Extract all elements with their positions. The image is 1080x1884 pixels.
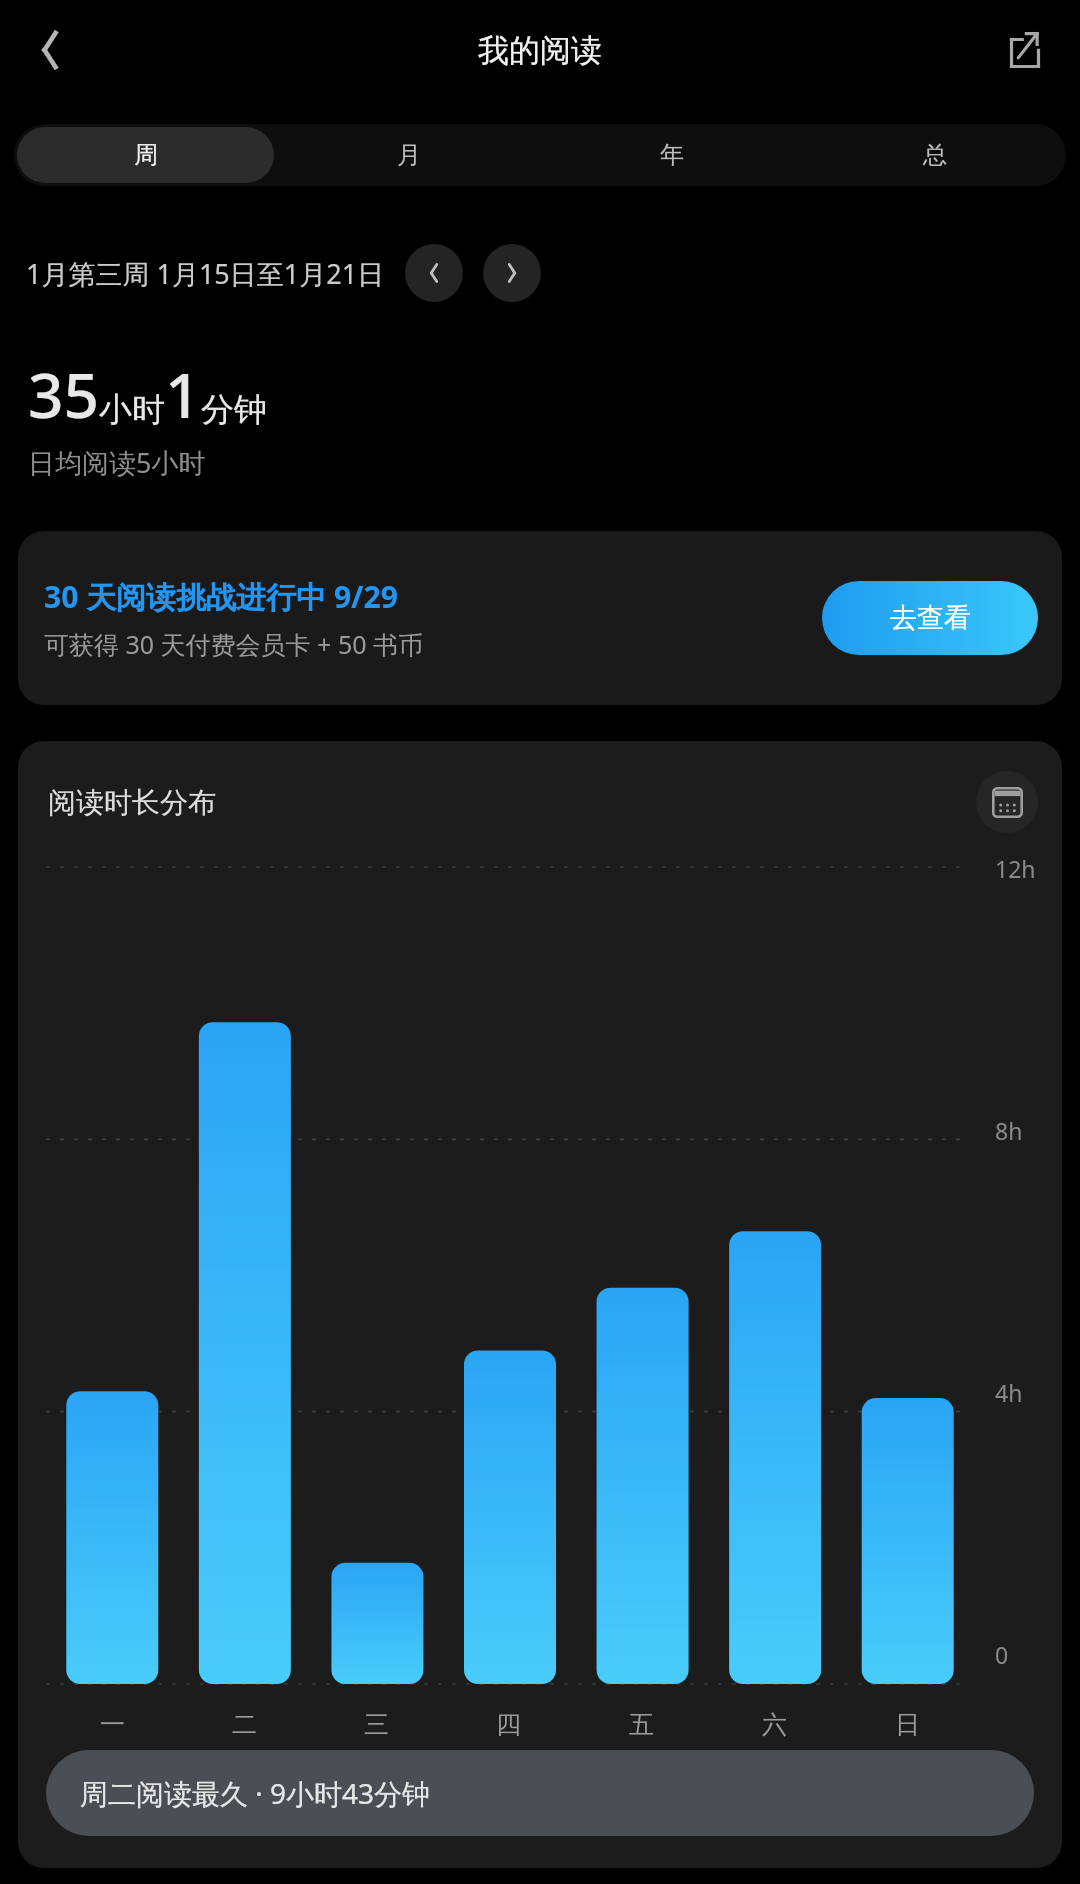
button[interactable]: Back bbox=[14, 14, 86, 86]
staticText: 我的阅读 bbox=[478, 31, 602, 70]
staticText: 可获得 30 天付费会员卡 + 50 书币 bbox=[44, 627, 424, 661]
staticText: 一 bbox=[100, 1709, 125, 1740]
button[interactable]: 去查看 bbox=[822, 581, 1038, 655]
button[interactable]: Previous week bbox=[405, 244, 463, 302]
staticText: 30 天阅读挑战进行中 9/29 bbox=[44, 576, 398, 617]
staticText: 35 bbox=[28, 352, 99, 436]
staticText: 去查看 bbox=[890, 601, 971, 635]
button[interactable]: 周 bbox=[17, 127, 274, 183]
staticText: 小时 bbox=[99, 389, 165, 431]
staticText: 4h bbox=[995, 1377, 1023, 1408]
staticText: 日 bbox=[895, 1709, 920, 1740]
button[interactable]: Share bbox=[992, 16, 1060, 84]
button[interactable]: 30 天阅读挑战进行中 9/29 bbox=[18, 531, 1062, 705]
button[interactable]: 周二阅读最久 · 9小时43分钟 bbox=[46, 1750, 1034, 1836]
staticText: 分钟 bbox=[201, 389, 267, 431]
staticText: 12h bbox=[995, 853, 1036, 884]
button[interactable]: 月 bbox=[280, 127, 537, 183]
staticText: 1 bbox=[165, 352, 201, 436]
staticText: 0 bbox=[995, 1639, 1009, 1670]
staticText: 周二阅读最久 · 9小时43分钟 bbox=[80, 1774, 431, 1812]
staticText: 月 bbox=[397, 140, 421, 170]
staticText: 日均阅读5小时 bbox=[28, 444, 206, 481]
button[interactable]: 年 bbox=[543, 127, 800, 183]
staticText: 四 bbox=[496, 1709, 521, 1740]
button[interactable]: Calendar bbox=[976, 771, 1038, 833]
staticText: 二 bbox=[232, 1709, 257, 1740]
staticText: 8h bbox=[995, 1115, 1023, 1146]
staticText: 三 bbox=[364, 1709, 389, 1740]
staticText: 六 bbox=[762, 1709, 787, 1740]
staticText: 总 bbox=[923, 140, 947, 170]
staticText: 五 bbox=[629, 1709, 654, 1740]
staticText: 年 bbox=[660, 140, 684, 170]
button[interactable]: Next week bbox=[483, 244, 541, 302]
button[interactable]: 总 bbox=[806, 127, 1063, 183]
staticText: 1月第三周 1月15日至1月21日 bbox=[26, 255, 385, 292]
staticText: 周 bbox=[134, 140, 158, 170]
staticText: 阅读时长分布 bbox=[48, 785, 976, 820]
